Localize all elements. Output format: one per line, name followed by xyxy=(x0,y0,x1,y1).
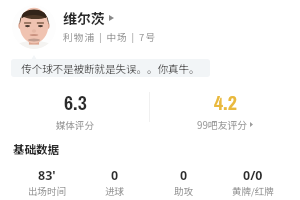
staticText: 6.3 xyxy=(64,89,87,116)
staticText: 传个球不是被断就是失误。。你真牛。 xyxy=(21,61,200,76)
button[interactable]: 传个球不是被断就是失误。。你真牛。 xyxy=(11,59,210,77)
button[interactable]: 4.2 xyxy=(150,78,300,130)
button[interactable]: 83' xyxy=(13,167,81,198)
staticText: 进球 xyxy=(105,184,125,198)
staticText: 0/0 xyxy=(243,167,263,184)
staticText: 黄牌/红牌 xyxy=(232,184,274,198)
staticText: 0 xyxy=(180,167,188,184)
staticText: 媒体评分 xyxy=(56,118,95,130)
button[interactable]: 0 xyxy=(81,167,149,198)
button[interactable]: 维尔茨 xyxy=(63,8,114,28)
button[interactable]: 0 xyxy=(149,167,218,198)
staticText: 利物浦 | 中场 | 7号 xyxy=(63,30,157,44)
staticText: 99吧友评分 xyxy=(197,118,248,130)
staticText: 维尔茨 xyxy=(63,8,105,28)
staticText: 4.2 xyxy=(214,89,237,116)
button[interactable]: 6.3 xyxy=(0,78,150,130)
button[interactable]: 0/0 xyxy=(218,167,287,198)
staticText: 0 xyxy=(111,167,119,184)
staticText: 出场时间 xyxy=(28,184,67,198)
button[interactable]: Player avatar xyxy=(12,5,56,49)
staticText: 83' xyxy=(38,167,56,184)
staticText: 助攻 xyxy=(174,184,194,198)
staticText: 基础数据 xyxy=(13,141,59,158)
